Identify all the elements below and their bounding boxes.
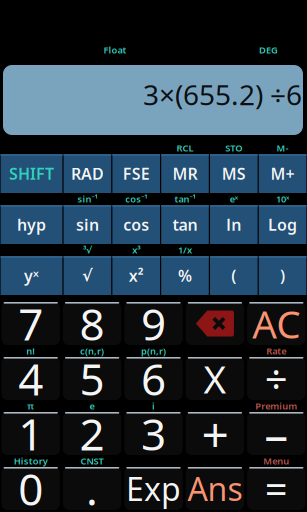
button[interactable]: FSE — [112, 154, 161, 193]
staticText: X — [203, 353, 226, 404]
button[interactable]: 5 — [61, 357, 123, 400]
staticText: Menu — [263, 455, 289, 467]
staticText: STO — [225, 142, 242, 154]
staticText: Log — [268, 214, 297, 235]
button[interactable]: Ans — [184, 467, 246, 510]
staticText: SHIFT — [9, 163, 54, 184]
staticText: 3 — [141, 404, 166, 463]
staticText: 2 — [80, 404, 105, 463]
staticText: 1/x — [178, 244, 192, 256]
staticText: = — [265, 462, 288, 512]
button[interactable]: Backspace — [184, 302, 246, 345]
button[interactable]: sin — [63, 205, 112, 244]
staticText: M+ — [271, 163, 295, 184]
button[interactable]: AC — [246, 302, 307, 345]
staticText: ( — [231, 265, 236, 286]
staticText: CNST — [81, 455, 104, 467]
button[interactable]: ) — [258, 256, 307, 295]
staticText: e — [90, 400, 95, 412]
button[interactable]: 3 — [123, 412, 184, 455]
button[interactable]: tan — [161, 205, 209, 244]
staticText: History — [14, 455, 48, 467]
button[interactable]: 6 — [123, 357, 184, 400]
button[interactable]: M+ — [258, 154, 307, 193]
button[interactable]: MS — [209, 154, 258, 193]
button[interactable]: 8 — [61, 302, 123, 345]
staticText: Float — [103, 44, 126, 56]
staticText: 0 — [18, 459, 43, 512]
button[interactable]: SHIFT — [0, 154, 63, 193]
staticText: i — [152, 400, 155, 412]
staticText: x³ — [132, 244, 140, 256]
staticText: FSE — [123, 163, 150, 184]
button[interactable]: . — [61, 467, 123, 510]
staticText: yˣ — [24, 265, 39, 286]
staticText: 5 — [80, 349, 105, 408]
staticText: MS — [222, 163, 246, 184]
button[interactable]: 0 — [0, 467, 61, 510]
staticText: 1 — [18, 404, 43, 463]
button[interactable]: 9 — [123, 302, 184, 345]
button[interactable]: Exp — [123, 467, 184, 510]
staticText: . — [86, 459, 98, 512]
staticText: 8 — [80, 294, 105, 353]
staticText: ln — [226, 214, 241, 235]
staticText: Ans — [187, 467, 242, 510]
button[interactable]: ( — [209, 256, 258, 295]
button[interactable]: yˣ — [0, 256, 63, 295]
staticText: √ — [82, 266, 93, 285]
button[interactable]: 2 — [61, 412, 123, 455]
staticText: sin⁻¹ — [77, 193, 97, 205]
staticText: % — [178, 265, 192, 286]
staticText: 7 — [18, 294, 43, 353]
staticText: 3×(655.2) ÷6 — [143, 76, 302, 113]
staticText: 10ˣ — [276, 193, 289, 205]
staticText: hyp — [17, 214, 46, 235]
button[interactable]: 4 — [0, 357, 61, 400]
staticText: Rate — [266, 345, 286, 357]
button[interactable]: 7 — [0, 302, 61, 345]
button[interactable]: ÷ — [246, 357, 307, 400]
staticText: RCL — [176, 142, 193, 154]
button[interactable]: % — [161, 256, 209, 295]
button[interactable]: = — [246, 467, 307, 510]
button[interactable]: MR — [161, 154, 209, 193]
staticText: eˣ — [230, 193, 238, 205]
button[interactable]: x² — [112, 256, 161, 295]
staticText: 9 — [141, 294, 166, 353]
staticText: sin — [76, 214, 99, 235]
staticText: – — [264, 402, 288, 465]
staticText: Premium — [255, 400, 297, 412]
staticText: cos⁻¹ — [125, 193, 147, 205]
button[interactable]: + — [184, 412, 246, 455]
staticText: 6 — [141, 349, 166, 408]
staticText: + — [201, 402, 228, 465]
button[interactable]: X — [184, 357, 246, 400]
staticText: MR — [172, 163, 197, 184]
staticText: ÷ — [265, 352, 288, 405]
staticText: ) — [280, 265, 285, 286]
staticText: p(n,r) — [141, 345, 166, 357]
staticText: M- — [277, 142, 289, 154]
staticText: n! — [26, 345, 35, 357]
button[interactable]: hyp — [0, 205, 63, 244]
staticText: x² — [129, 265, 144, 286]
staticText: tan — [172, 214, 197, 235]
staticText: 4 — [18, 349, 43, 408]
button[interactable]: cos — [112, 205, 161, 244]
button[interactable]: ln — [209, 205, 258, 244]
staticText: Exp — [126, 467, 181, 510]
staticText: ³√ — [83, 244, 92, 256]
staticText: RAD — [71, 163, 104, 184]
staticText: π — [27, 400, 34, 412]
staticText: cos — [123, 214, 149, 235]
staticText: tan⁻¹ — [174, 193, 195, 205]
button[interactable]: Log — [258, 205, 307, 244]
button[interactable]: RAD — [63, 154, 112, 193]
staticText: c(n,r) — [80, 345, 104, 357]
staticText: AC — [252, 298, 300, 349]
button[interactable]: 1 — [0, 412, 61, 455]
staticText: DEG — [259, 44, 278, 56]
button[interactable]: √ — [63, 256, 112, 295]
button[interactable]: – — [246, 412, 307, 455]
